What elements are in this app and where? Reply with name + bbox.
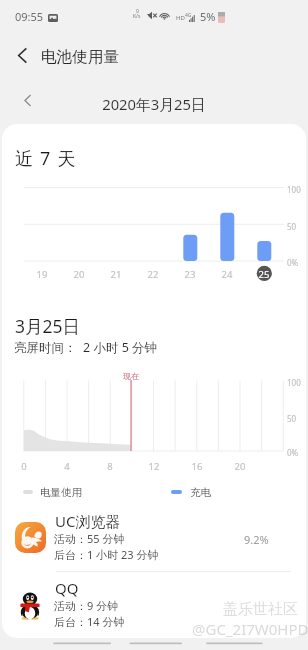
staticText: 亮屏时间： 2 小时 5 分钟 <box>14 339 158 356</box>
staticText: 4 <box>55 460 79 473</box>
staticText: 9.2% <box>244 532 269 547</box>
staticText: 12 <box>142 460 166 473</box>
staticText: UC浏览器 <box>55 511 121 531</box>
staticText: 2020年3月25日 <box>0 94 308 114</box>
staticText: 近 7 天 <box>15 146 77 171</box>
staticText: 盖乐世社区 <box>223 600 298 619</box>
staticText: 8 <box>98 460 122 473</box>
staticText: 现在 <box>116 371 146 381</box>
staticText: 0 <box>12 460 36 473</box>
staticText: 20 <box>67 268 91 281</box>
staticText: 24 <box>215 268 239 281</box>
staticText: @GC_2I7W0HPD <box>192 619 308 639</box>
button[interactable]: Previous day <box>16 88 40 112</box>
staticText: 0% <box>287 447 299 458</box>
staticText: 50 <box>287 221 297 232</box>
staticText: 4G <box>185 12 192 19</box>
staticText: K/s <box>133 13 141 20</box>
staticText: 16 <box>185 460 209 473</box>
staticText: 电量使用 <box>40 486 82 499</box>
staticText: 充电 <box>190 486 211 499</box>
staticText: 22 <box>141 268 165 281</box>
staticText: 100 <box>287 184 301 195</box>
staticText: QQ <box>55 578 79 598</box>
staticText: 21 <box>104 268 128 281</box>
button[interactable]: QQ <box>2 573 306 638</box>
staticText: 20 <box>228 460 252 473</box>
staticText: 后台：14 分钟 <box>54 614 125 629</box>
staticText: 25 <box>252 268 276 281</box>
staticText: 活动：9 分钟 <box>54 598 119 613</box>
staticText: 09:55 <box>15 9 44 24</box>
staticText: 50 <box>287 413 297 424</box>
staticText: 100 <box>287 377 301 388</box>
staticText: 23 <box>178 268 202 281</box>
button[interactable]: Back <box>10 43 34 67</box>
staticText: 活动：55 分钟 <box>54 531 125 546</box>
staticText: 电池使用量 <box>41 47 119 67</box>
staticText: 5% <box>200 9 216 24</box>
staticText: 3月25日 <box>15 314 81 338</box>
staticText: 0% <box>287 257 299 268</box>
button[interactable]: UC浏览器 <box>2 506 306 571</box>
staticText: 19 <box>30 268 54 281</box>
staticText: 后台：1 小时 23 分钟 <box>54 547 159 562</box>
staticText: 0 <box>136 8 139 15</box>
staticText: HD <box>176 14 185 22</box>
